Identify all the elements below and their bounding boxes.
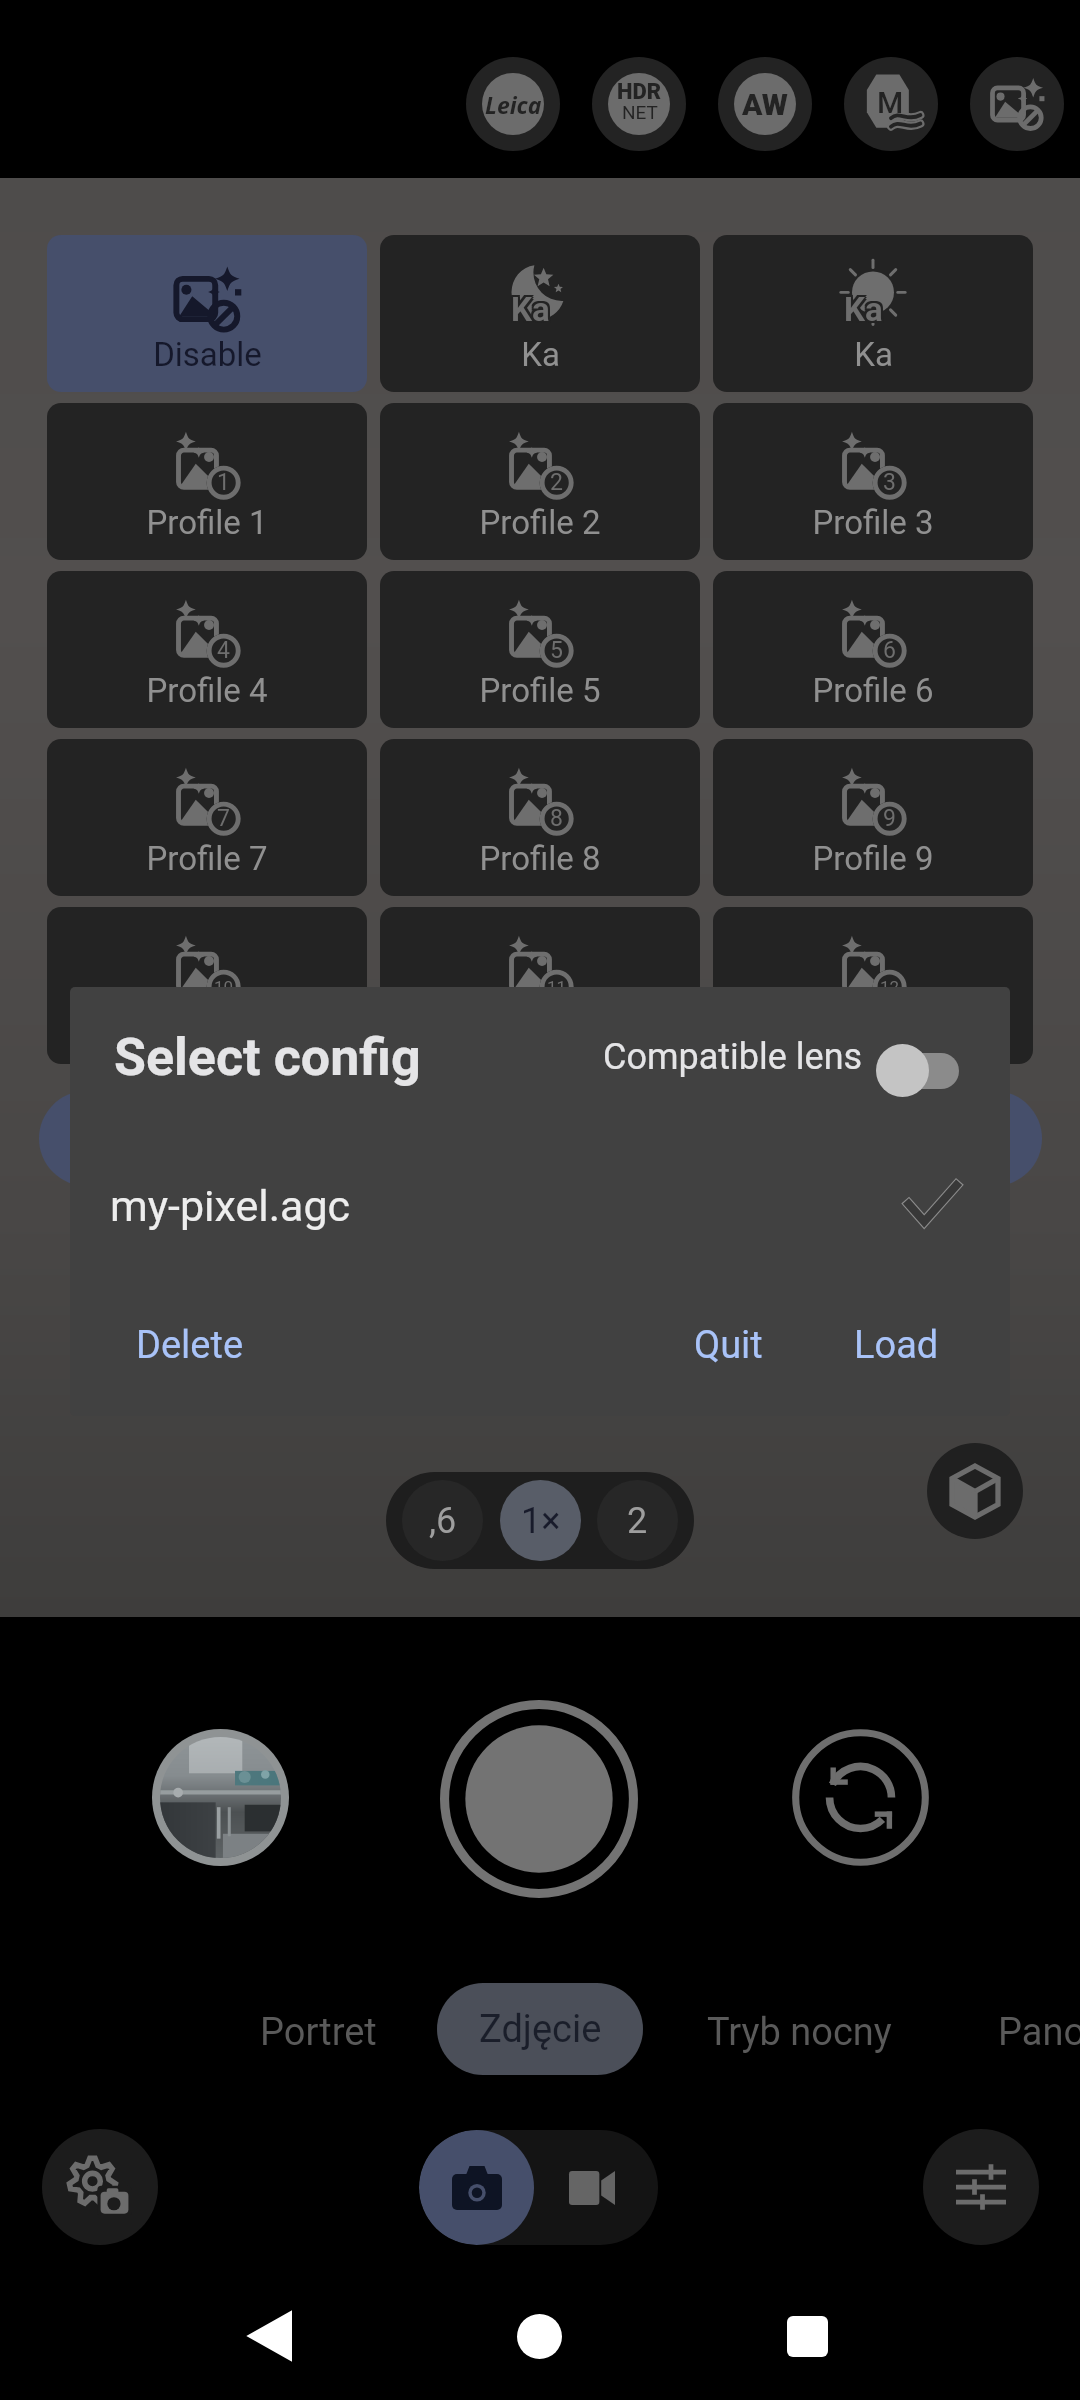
button[interactable]: Switch camera (792, 1729, 929, 1866)
button[interactable]: Portret (236, 1986, 353, 2078)
button[interactable]: Compatible lens (594, 1017, 966, 1115)
staticText: my-pixel.agc (110, 1181, 351, 1231)
staticText: 4 (217, 637, 230, 664)
button[interactable]: 9 (713, 739, 1033, 896)
button[interactable]: Manual controls (923, 2129, 1039, 2245)
staticText: 9 (883, 805, 896, 832)
staticText: 5 (550, 637, 563, 664)
staticText: Profile 7 (146, 839, 268, 878)
staticText: Profile 2 (479, 503, 601, 542)
staticText: Load (854, 1323, 939, 1368)
button[interactable]: Disable processing (970, 57, 1064, 151)
button[interactable]: HDRNet (592, 57, 686, 151)
button[interactable]: Photo mode (419, 2130, 534, 2245)
staticText: Ka (844, 290, 883, 329)
staticText: NET (622, 101, 658, 123)
button[interactable]: 2 (597, 1480, 678, 1561)
button[interactable]: 3 (713, 403, 1033, 560)
staticText: Tryb nocny (707, 2010, 892, 2055)
staticText: Profile 5 (479, 671, 601, 710)
staticText: Profile 6 (812, 671, 934, 710)
staticText: AW (742, 87, 788, 122)
button[interactable]: M model (844, 57, 938, 151)
staticText: Ka (844, 292, 883, 331)
staticText: Ka (842, 292, 881, 331)
staticText: Profile 9 (812, 839, 934, 878)
staticText: Ka (511, 288, 550, 327)
button[interactable]: Next page (947, 1091, 1042, 1186)
button[interactable]: 7 (47, 739, 367, 896)
staticText: 2 (627, 1500, 648, 1542)
staticText: HDR (617, 79, 662, 105)
button[interactable]: Delete (112, 1307, 220, 1383)
button[interactable]: 10 (47, 907, 367, 1064)
staticText: Quit (694, 1323, 763, 1368)
staticText: Ka (511, 292, 550, 331)
button[interactable]: 1 (47, 403, 367, 560)
button[interactable]: 12 (713, 907, 1033, 1064)
staticText: Ka (842, 290, 881, 329)
staticText: 7 (217, 805, 230, 832)
button[interactable]: Auto white balance (718, 57, 812, 151)
staticText: 10 (214, 977, 234, 997)
button[interactable]: Ka (380, 235, 700, 392)
staticText: Ka (521, 335, 560, 374)
button[interactable]: Pano (974, 1986, 1062, 2078)
staticText: Profile 10 (137, 1007, 277, 1046)
button[interactable]: Back (231, 2296, 311, 2376)
staticText: Ka (844, 288, 883, 327)
staticText: Ka (509, 292, 548, 331)
button[interactable]: 6 (713, 571, 1033, 728)
staticText: Ka (854, 335, 893, 374)
button[interactable]: Tryb nocny (683, 1986, 868, 2078)
staticText: 12 (880, 977, 900, 997)
staticText: Ka (846, 290, 885, 329)
button[interactable]: 2 (380, 403, 700, 560)
button[interactable]: my-pixel.agc (70, 1145, 1010, 1237)
staticText: Profile 12 (803, 1007, 943, 1046)
staticText: Ka (513, 292, 552, 331)
button[interactable]: Camera settings (42, 2129, 158, 2245)
staticText: Profile 8 (479, 839, 601, 878)
button[interactable]: Disable (47, 235, 367, 392)
button[interactable]: 4 (47, 571, 367, 728)
button[interactable]: 3D model (927, 1443, 1023, 1539)
button[interactable]: Previous page (39, 1091, 134, 1186)
staticText: Delete (136, 1323, 244, 1368)
staticText: Ka (846, 292, 885, 331)
button[interactable]: Quit (670, 1307, 739, 1383)
button[interactable]: ,6 (402, 1480, 483, 1561)
button[interactable]: 1× (500, 1480, 581, 1561)
staticText: Ka (511, 290, 550, 329)
staticText: Leica (485, 89, 542, 120)
staticText: Profile 3 (812, 503, 934, 542)
button[interactable]: Leica mode (466, 57, 560, 151)
staticText: 6 (883, 637, 896, 664)
button[interactable]: Home (499, 2296, 579, 2376)
button[interactable]: 5 (380, 571, 700, 728)
staticText: 11 (547, 977, 567, 997)
button[interactable]: 8 (380, 739, 700, 896)
staticText: Compatible lens (603, 1036, 863, 1078)
staticText: Disable (153, 335, 262, 374)
button[interactable]: Zdjęcie (437, 1983, 643, 2075)
staticText: 8 (550, 805, 563, 832)
staticText: Pano (998, 2010, 1080, 2055)
staticText: Ka (842, 288, 881, 327)
button[interactable]: Last photo (152, 1729, 289, 1866)
button[interactable]: Recent apps (767, 2296, 847, 2376)
staticText: Ka (846, 288, 885, 327)
button[interactable]: Video mode (534, 2130, 649, 2245)
staticText: Select config (114, 1027, 421, 1088)
staticText: Portret (260, 2010, 377, 2055)
staticText: ,6 (429, 1500, 457, 1542)
staticText: M (877, 85, 904, 120)
button[interactable]: Shutter (440, 1700, 638, 1898)
button[interactable]: 11 (380, 907, 700, 1064)
staticText: Ka (509, 288, 548, 327)
button[interactable]: Load (830, 1307, 915, 1383)
staticText: Profile 1 (146, 503, 268, 542)
staticText: Ka (513, 290, 552, 329)
button[interactable]: Ka (713, 235, 1033, 392)
